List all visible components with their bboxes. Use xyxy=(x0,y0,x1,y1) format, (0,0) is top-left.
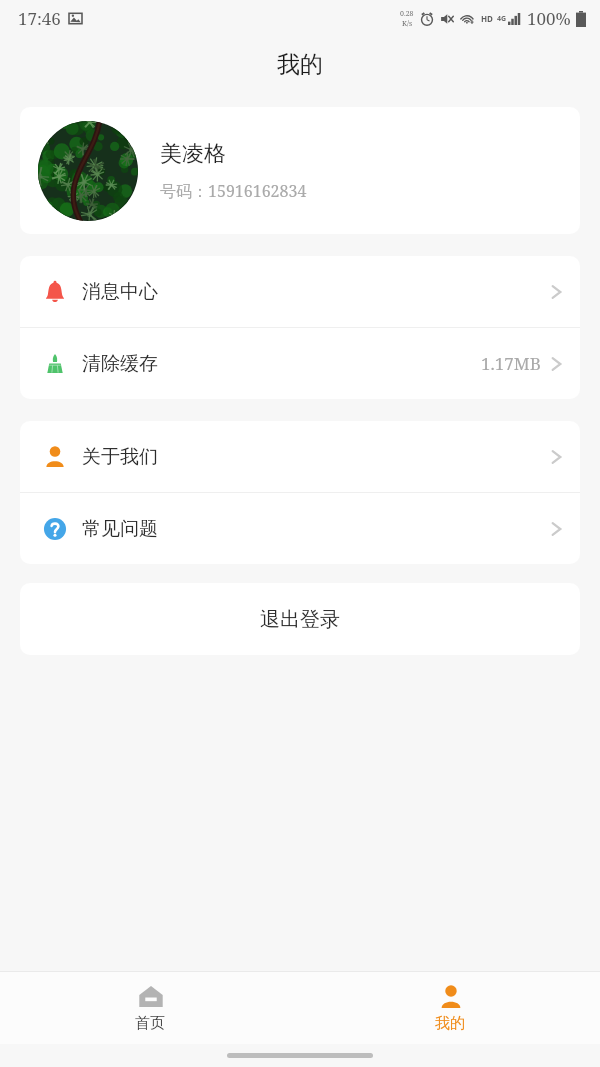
staticText: 0.28 xyxy=(400,9,414,19)
staticText: K/s xyxy=(402,19,413,29)
staticText: 首页 xyxy=(135,1014,165,1033)
staticText: 1.17MB xyxy=(481,352,541,375)
staticText: 我的 xyxy=(277,50,323,79)
button[interactable]: 常见问题 xyxy=(20,493,580,564)
staticText: 我的 xyxy=(435,1014,465,1033)
staticText: 17:46 xyxy=(18,7,61,30)
staticText: 退出登录 xyxy=(260,607,340,632)
button[interactable]: 首页 xyxy=(0,972,300,1044)
staticText: 关于我们 xyxy=(82,445,158,469)
staticText: 4G xyxy=(497,14,507,24)
button[interactable]: 关于我们 xyxy=(20,421,580,492)
staticText: HD xyxy=(481,13,493,24)
staticText: 号码：15916162834 xyxy=(160,180,307,202)
staticText: 100% xyxy=(527,7,571,30)
button[interactable]: 退出登录 xyxy=(20,583,580,655)
staticText: 清除缓存 xyxy=(82,352,158,376)
button[interactable]: 消息中心 xyxy=(20,256,580,327)
button[interactable]: 我的 xyxy=(300,972,600,1044)
button[interactable]: 美凌格 xyxy=(20,107,580,234)
staticText: 常见问题 xyxy=(82,517,158,541)
staticText: 美凌格 xyxy=(160,140,226,168)
staticText: 消息中心 xyxy=(82,280,158,304)
button[interactable]: 清除缓存 xyxy=(20,328,580,399)
